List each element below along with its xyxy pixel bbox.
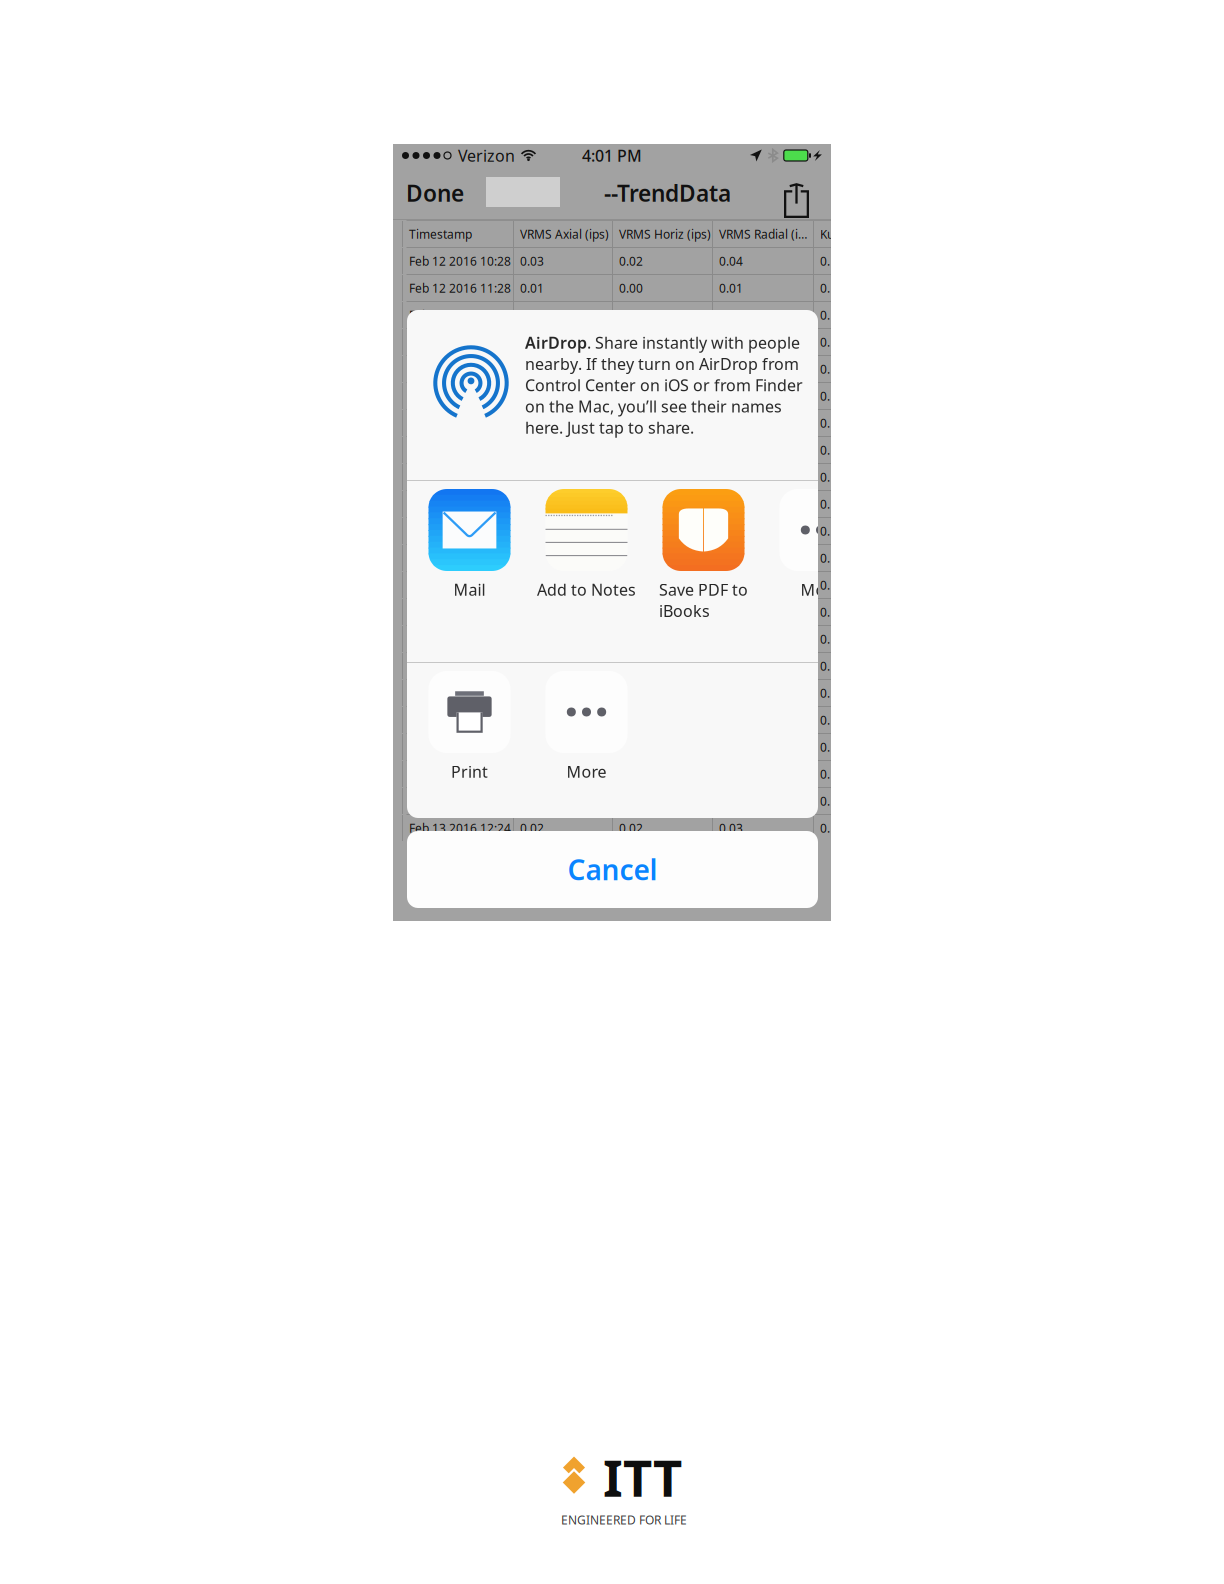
staticText: Feb 12 2016 16:28 xyxy=(409,415,511,431)
staticText: 0.01 xyxy=(520,280,544,296)
button[interactable]: Save PDF to iBooks xyxy=(644,489,762,662)
staticText: 0. xyxy=(820,253,830,269)
button[interactable]: More xyxy=(761,489,879,662)
staticText: 0.03 xyxy=(520,469,544,485)
staticText: 0. xyxy=(820,712,830,728)
staticText: 0.02 xyxy=(619,307,643,323)
staticText: More xyxy=(800,579,840,600)
staticText: 0.03 xyxy=(520,577,544,593)
staticText: Feb 13 2016 12:24 xyxy=(409,820,511,836)
button[interactable]: Print xyxy=(410,671,528,818)
staticText: 0.04 xyxy=(719,253,743,269)
staticText: 0.01 xyxy=(719,280,743,296)
staticText: Feb 12 2016 14:28 xyxy=(409,361,511,377)
staticText: 0. xyxy=(820,793,830,809)
staticText: 0. xyxy=(820,334,830,350)
staticText: 0.04 xyxy=(520,415,544,431)
staticText: 0. xyxy=(820,820,830,836)
staticText: 0.04 xyxy=(520,307,544,323)
staticText: 0. xyxy=(820,361,830,377)
staticText: 0. xyxy=(820,577,830,593)
staticText: 0. xyxy=(820,658,830,674)
staticText: Feb 13 2016 06:27 xyxy=(409,658,511,674)
staticText: Feb 12 2016 15:28 xyxy=(409,388,511,404)
staticText: Feb 13 2016 07:27 xyxy=(409,685,511,701)
staticText: 0. xyxy=(820,388,830,404)
staticText: 0.03 xyxy=(520,361,544,377)
staticText: Mail xyxy=(453,579,485,600)
button[interactable]: Mail xyxy=(410,489,528,662)
button[interactable]: Add to Notes xyxy=(527,489,645,662)
staticText: VRMS Axial (ips) xyxy=(520,226,609,242)
staticText: 0.02 xyxy=(619,820,643,836)
staticText: 0. xyxy=(820,550,830,566)
button[interactable]: Done xyxy=(399,171,471,215)
staticText: 0. xyxy=(820,442,830,458)
staticText: 0.02 xyxy=(520,820,544,836)
staticText: 0.02 xyxy=(619,523,643,539)
staticText: 0.02 xyxy=(619,253,643,269)
staticText: Feb 12 2016 18:28 xyxy=(409,469,511,485)
staticText: 0. xyxy=(820,685,830,701)
staticText: 0. xyxy=(820,280,830,296)
staticText: 0.02 xyxy=(619,361,643,377)
staticText: More xyxy=(566,761,606,782)
button[interactable]: More xyxy=(527,671,645,818)
staticText: 0. xyxy=(820,739,830,755)
staticText: 0. xyxy=(820,766,830,782)
staticText: 0.00 xyxy=(619,280,643,296)
staticText: 0.03 xyxy=(719,307,743,323)
staticText: 0.00 xyxy=(619,388,643,404)
staticText: 0.02 xyxy=(619,658,643,674)
staticText: 0.01 xyxy=(619,550,643,566)
button[interactable]: Cancel xyxy=(407,831,818,908)
staticText: Feb 12 2016 10:28 xyxy=(409,253,511,269)
staticText: Save PDF to iBooks xyxy=(659,579,748,621)
staticText: 0.02 xyxy=(619,577,643,593)
staticText: 4:01 PM xyxy=(582,145,642,166)
staticText: 0.01 xyxy=(520,388,544,404)
staticText: 0.04 xyxy=(719,361,743,377)
staticText: 0.02 xyxy=(719,334,743,350)
staticText: 0.03 xyxy=(520,253,544,269)
staticText: 0.04 xyxy=(719,469,743,485)
staticText: Add to Notes xyxy=(537,579,636,600)
staticText: Verizon xyxy=(458,145,515,166)
staticText: 0.03 xyxy=(719,523,743,539)
staticText: 0.02 xyxy=(619,415,643,431)
staticText: ITT xyxy=(603,1443,682,1511)
staticText: 0.01 xyxy=(719,496,743,512)
staticText: 0. xyxy=(820,307,830,323)
staticText: 0. xyxy=(820,631,830,647)
staticText: VRMS Radial (ips) xyxy=(719,226,813,242)
button[interactable]: Share xyxy=(776,178,817,222)
staticText: Feb 12 2016 21:28 xyxy=(409,550,511,566)
staticText: 0.02 xyxy=(520,658,544,674)
staticText: Timestamp xyxy=(409,226,472,242)
staticText: VRMS Horiz (ips) xyxy=(619,226,711,242)
staticText: Feb 12 2016 11:28 xyxy=(409,280,511,296)
